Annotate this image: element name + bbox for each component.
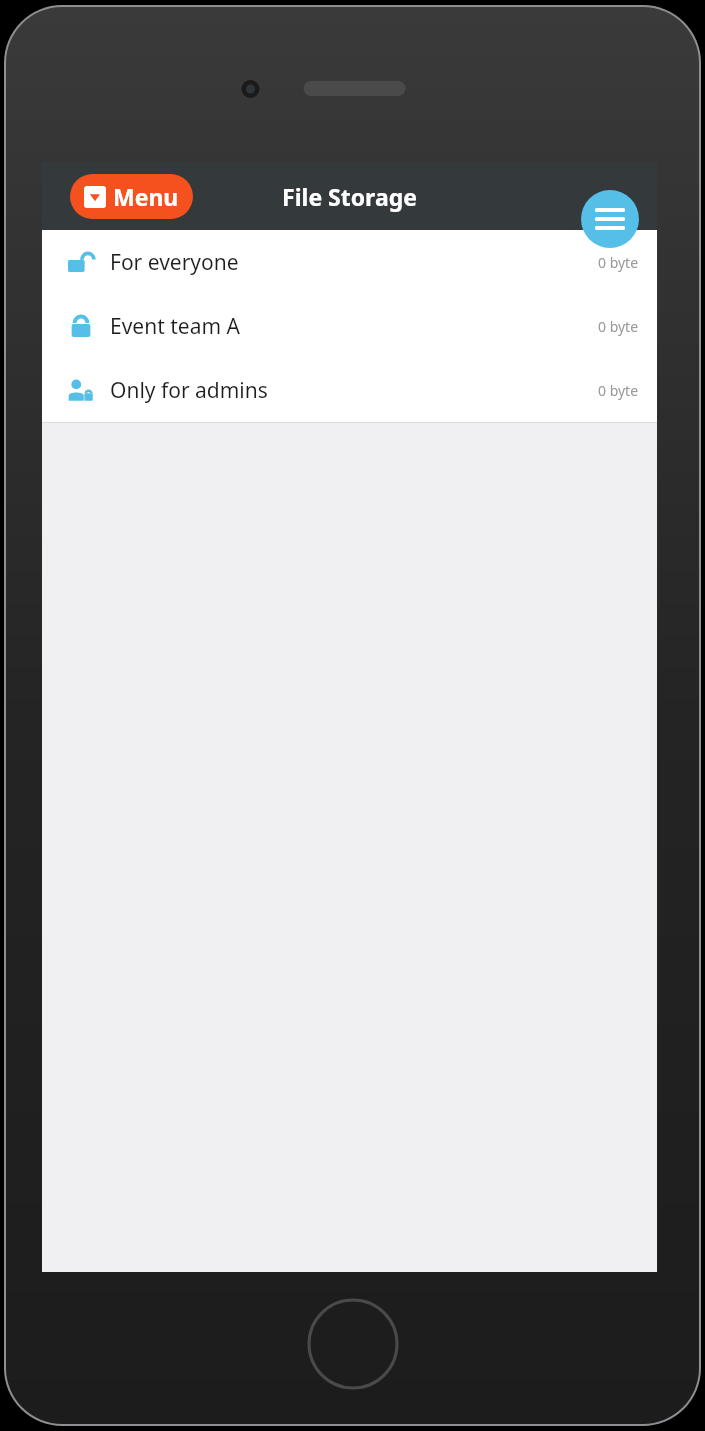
staticText: Menu bbox=[113, 181, 179, 212]
button[interactable]: Only for admins bbox=[42, 358, 657, 422]
staticText: 0 byte bbox=[598, 317, 639, 336]
button[interactable]: Menu bbox=[70, 174, 193, 219]
staticText: Event team A bbox=[110, 312, 240, 341]
staticText: Only for admins bbox=[110, 376, 268, 405]
button[interactable]: For everyone bbox=[42, 230, 657, 294]
button[interactable]: Event team A bbox=[42, 294, 657, 358]
staticText: 0 byte bbox=[598, 381, 639, 400]
staticText: File Storage bbox=[282, 181, 417, 212]
button[interactable]: Menu options bbox=[581, 190, 639, 248]
staticText: 0 byte bbox=[598, 253, 639, 272]
staticText: For everyone bbox=[110, 248, 239, 277]
